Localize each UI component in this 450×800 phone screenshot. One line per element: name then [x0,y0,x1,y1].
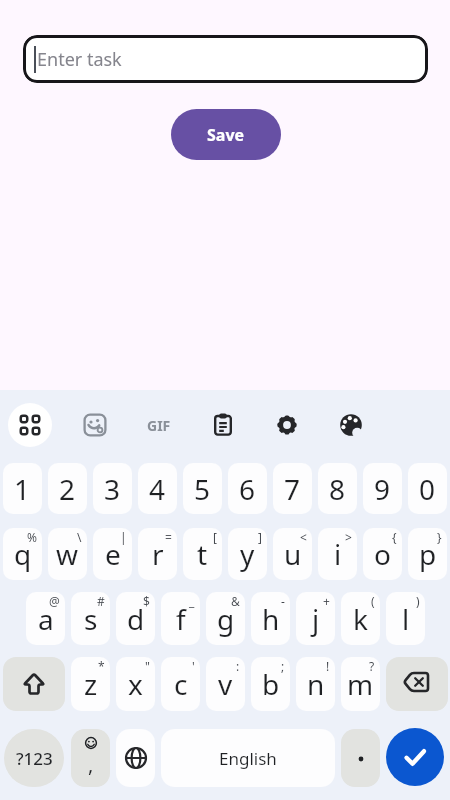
button[interactable]: w [48,528,87,580]
button[interactable] [73,403,117,447]
button[interactable]: Enter task [23,35,428,83]
staticText: f [176,600,186,638]
staticText: * [98,658,105,674]
button[interactable]: c [161,657,200,711]
button[interactable]: 1 [3,463,42,514]
staticText: _ [189,593,195,609]
button[interactable]: x [116,657,155,711]
button[interactable]: r [138,528,177,580]
button[interactable]: 8 [318,463,357,514]
button[interactable]: a [26,592,65,645]
staticText: ? [369,658,375,674]
staticText: a [38,600,54,638]
staticText: 3 [104,470,121,508]
button[interactable]: o [363,528,402,580]
staticText: ( [371,593,375,609]
staticText: 5 [194,470,211,508]
button[interactable]: GIF [137,403,181,447]
staticText: e [105,535,121,573]
button[interactable]: 6 [228,463,267,514]
staticText: s [84,600,98,638]
button[interactable] [386,728,444,786]
button[interactable]: 2 [48,463,87,514]
staticText: 9 [374,470,391,508]
staticText: g [217,600,235,638]
button[interactable]: 3 [93,463,132,514]
button[interactable]: n [296,657,335,711]
staticText: 1 [14,470,31,508]
button[interactable] [116,729,155,787]
button[interactable]: q [3,528,42,580]
staticText: 8 [329,470,346,508]
staticText: c [174,665,188,703]
staticText: \ [77,529,82,545]
button[interactable]: e [93,528,132,580]
button[interactable]: u [273,528,312,580]
button[interactable]: 9 [363,463,402,514]
staticText: r [152,535,164,573]
staticText: % [27,529,37,545]
staticText: Save [207,124,245,146]
staticText: m [347,665,374,703]
staticText: 0 [419,470,436,508]
button[interactable]: g [206,592,245,645]
button[interactable]: 7 [273,463,312,514]
staticText: b [262,665,280,703]
button[interactable]: y [228,528,267,580]
staticText: ] [258,529,262,545]
button[interactable] [386,657,448,711]
button[interactable]: t [183,528,222,580]
button[interactable]: , [71,729,110,787]
staticText: z [84,665,98,703]
button[interactable]: l [386,592,425,645]
button[interactable]: v [206,657,245,711]
button[interactable]: p [408,528,447,580]
staticText: 4 [149,470,166,508]
staticText: 6 [239,470,256,508]
staticText: j [312,600,320,638]
button[interactable]: z [71,657,110,711]
staticText: 2 [59,470,76,508]
staticText: y [240,535,255,573]
staticText: GIF [147,416,171,435]
staticText: ; [281,658,285,674]
button[interactable] [8,403,52,447]
button[interactable]: m [341,657,380,711]
staticText: t [197,535,208,573]
button[interactable]: 5 [183,463,222,514]
staticText: o [374,535,391,573]
staticText: q [14,535,32,573]
button[interactable]: Save [171,109,281,160]
button[interactable] [201,403,245,447]
staticText: ) [416,593,420,609]
button[interactable]: English [161,729,335,787]
button[interactable] [3,657,65,711]
button[interactable]: 4 [138,463,177,514]
staticText: { [392,529,397,545]
button[interactable] [329,403,373,447]
staticText: - [281,593,285,609]
button[interactable]: h [251,592,290,645]
button[interactable]: 0 [408,463,447,514]
staticText: ! [326,658,330,674]
button[interactable]: s [71,592,110,645]
staticText: $ [143,593,150,609]
staticText: # [97,593,105,609]
staticText: } [437,529,442,545]
button[interactable] [341,729,380,787]
button[interactable]: b [251,657,290,711]
staticText: v [218,665,233,703]
staticText: ?123 [16,747,53,770]
button[interactable]: i [318,528,357,580]
staticText: , [88,751,94,778]
button[interactable]: k [341,592,380,645]
button[interactable]: f [161,592,200,645]
staticText: n [307,665,325,703]
button[interactable]: d [116,592,155,645]
button[interactable]: ?123 [4,729,64,787]
button[interactable] [265,403,309,447]
staticText: Enter task [37,47,122,72]
button[interactable]: j [296,592,335,645]
staticText: < [300,529,307,545]
staticText: p [419,535,437,573]
